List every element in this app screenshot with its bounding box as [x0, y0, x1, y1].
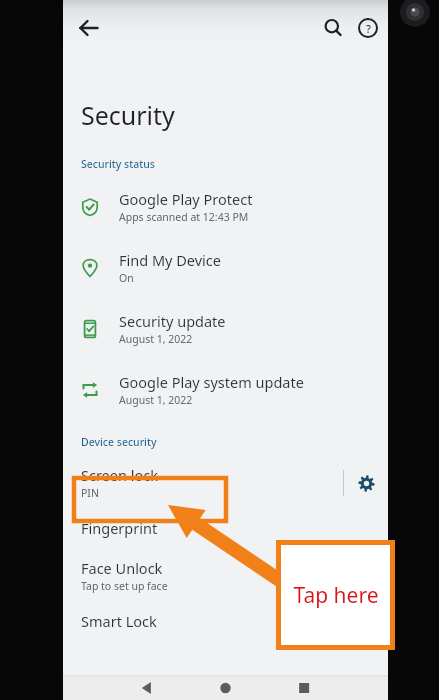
- staticText: Google Play Protect: [119, 189, 253, 209]
- staticText: Smart Lock: [81, 611, 157, 631]
- button[interactable]: Google Play Protect: [63, 187, 388, 226]
- button[interactable]: Search: [315, 10, 351, 46]
- staticText: Security update: [119, 311, 226, 331]
- staticText: ?: [366, 21, 371, 36]
- staticText: Face Unlock: [81, 558, 163, 578]
- staticText: Screen lock: [81, 465, 158, 485]
- button[interactable]: Google Play system update: [63, 370, 388, 409]
- staticText: On: [119, 271, 134, 285]
- button[interactable]: Screen lock settings: [344, 461, 388, 505]
- button[interactable]: Smart Lock: [63, 611, 388, 631]
- staticText: Security status: [81, 157, 155, 171]
- button[interactable]: Fingerprint: [63, 518, 388, 538]
- staticText: Fingerprint: [81, 518, 158, 538]
- staticText: Tap to set up face: [81, 579, 168, 593]
- staticText: Device security: [81, 435, 157, 449]
- staticText: PIN: [81, 486, 99, 500]
- button[interactable]: Back: [71, 10, 107, 46]
- staticText: August 1, 2022: [119, 332, 193, 346]
- button[interactable]: Security update: [63, 309, 388, 348]
- staticText: Security: [81, 98, 175, 132]
- button[interactable]: Face Unlock: [63, 558, 388, 593]
- button[interactable]: Find My Device: [63, 248, 388, 287]
- staticText: Tap here: [293, 581, 379, 610]
- staticText: August 1, 2022: [119, 393, 193, 407]
- staticText: Apps scanned at 12:43 PM: [119, 210, 249, 224]
- button[interactable]: Screen lock: [63, 459, 343, 506]
- staticText: Find My Device: [119, 250, 221, 270]
- button[interactable]: Help: [350, 10, 386, 46]
- staticText: Google Play system update: [119, 372, 304, 392]
